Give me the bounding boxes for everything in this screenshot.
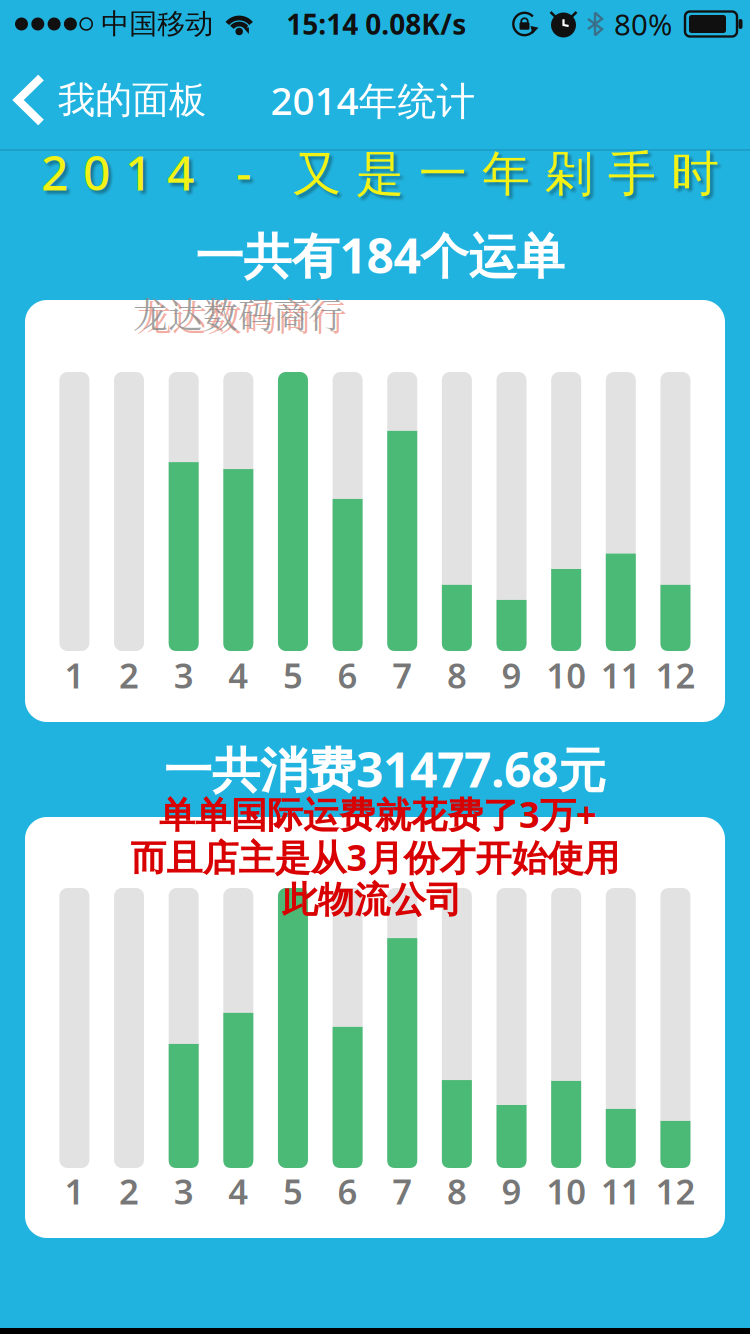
staticText: 一共有184个运单 <box>195 223 564 287</box>
staticText: 6 <box>338 652 358 698</box>
staticText: 10 <box>546 1168 586 1214</box>
staticText: 8 <box>447 652 467 698</box>
staticText: 1 <box>64 1168 84 1214</box>
staticText: 10 <box>546 652 586 698</box>
staticText: 80% <box>614 4 672 43</box>
staticText: 3 <box>174 1168 194 1214</box>
staticText: 7 <box>392 652 412 698</box>
staticText: 此物流公司 <box>282 878 462 922</box>
staticText: 11 <box>601 652 641 698</box>
button[interactable]: 我的面板 <box>18 77 206 123</box>
staticText: 单单国际运费就花费了3万+ <box>159 790 597 838</box>
staticText: 12 <box>655 1168 695 1214</box>
staticText: 7 <box>392 1168 412 1214</box>
staticText: 1 <box>64 652 84 698</box>
staticText: 3 <box>174 652 194 698</box>
staticText: 2 <box>119 1168 139 1214</box>
staticText: 8 <box>447 1168 467 1214</box>
staticText: 2014 - 又是一年剁手时 <box>41 140 719 204</box>
staticText: 龙达数码商行 <box>137 291 347 341</box>
staticText: 9 <box>501 1168 521 1214</box>
staticText: 5 <box>283 1168 303 1214</box>
staticText: 9 <box>501 652 521 698</box>
staticText: 中国移动 <box>101 7 213 41</box>
staticText: 15:14 0.08K/s <box>286 5 466 43</box>
staticText: 5 <box>283 652 303 698</box>
staticText: 4 <box>228 652 248 698</box>
staticText: 龙达数码商行 <box>133 288 343 338</box>
staticText: 2014年统计 <box>270 74 475 126</box>
staticText: 12 <box>655 652 695 698</box>
staticText: 而且店主是从3月份才开始使用 <box>130 833 619 881</box>
staticText: 一共消费31477.68元 <box>164 737 606 801</box>
staticText: 2 <box>119 652 139 698</box>
staticText: 11 <box>601 1168 641 1214</box>
staticText: 我的面板 <box>58 77 206 123</box>
staticText: 6 <box>338 1168 358 1214</box>
staticText: 4 <box>228 1168 248 1214</box>
